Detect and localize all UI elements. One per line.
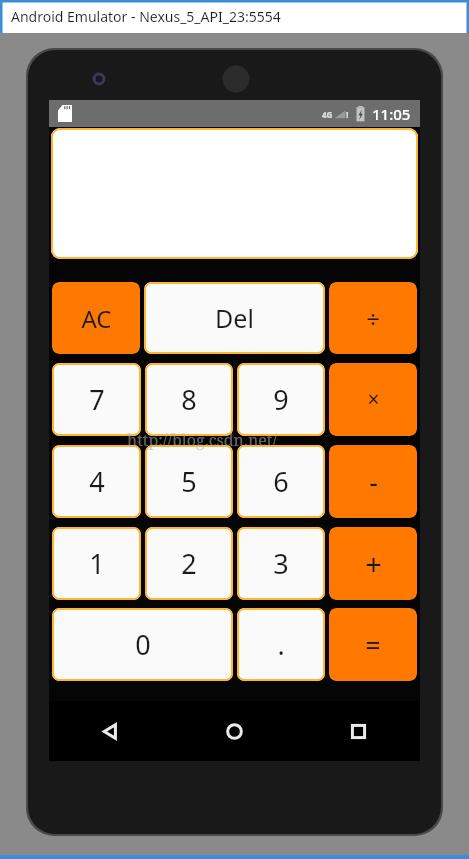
button[interactable]: 1 [52, 527, 141, 600]
staticText: 6 [273, 463, 289, 500]
staticText: ÷ [366, 302, 380, 335]
staticText: + [365, 544, 382, 583]
button[interactable]: - [329, 445, 417, 518]
staticText: 8 [181, 381, 197, 418]
staticText: = [365, 626, 381, 663]
button[interactable]: . [237, 608, 325, 681]
button[interactable]: Del [144, 282, 325, 354]
button[interactable]: 0 [52, 608, 233, 681]
button[interactable]: 8 [145, 363, 233, 436]
button[interactable]: 3 [237, 527, 325, 600]
button[interactable]: 5 [145, 445, 233, 518]
staticText: 3 [273, 545, 289, 582]
staticText: ! [346, 108, 349, 120]
button[interactable]: 4 [52, 445, 141, 518]
staticText: 4 [89, 463, 105, 500]
staticText: 0 [135, 626, 151, 663]
button[interactable]: × [329, 363, 417, 436]
button[interactable]: AC [52, 282, 140, 354]
button[interactable]: Back [49, 701, 172, 761]
staticText: 11:05 [372, 104, 411, 124]
button[interactable]: + [329, 527, 417, 600]
button[interactable]: 9 [237, 363, 325, 436]
staticText: 5 [181, 463, 197, 500]
staticText: 2 [181, 545, 197, 582]
staticText: 1 [89, 545, 105, 582]
button[interactable]: ÷ [329, 282, 417, 354]
staticText: × [367, 385, 380, 414]
button[interactable]: Home [172, 701, 296, 761]
staticText: Android Emulator - Nexus_5_API_23:5554 [11, 7, 281, 26]
button[interactable]: 2 [145, 527, 233, 600]
staticText: AC [81, 302, 112, 335]
button[interactable] [51, 128, 418, 259]
staticText: 4G [322, 109, 333, 120]
staticText: 9 [273, 381, 289, 418]
staticText: . [277, 626, 285, 663]
staticText: - [369, 463, 378, 500]
staticText: 7 [89, 381, 105, 418]
button[interactable]: Recent apps [296, 701, 420, 761]
staticText: Del [215, 301, 254, 335]
button[interactable]: = [329, 608, 417, 681]
button[interactable]: 6 [237, 445, 325, 518]
staticText: http://blog.csdn.net/ [127, 429, 278, 451]
button[interactable]: 7 [52, 363, 141, 436]
